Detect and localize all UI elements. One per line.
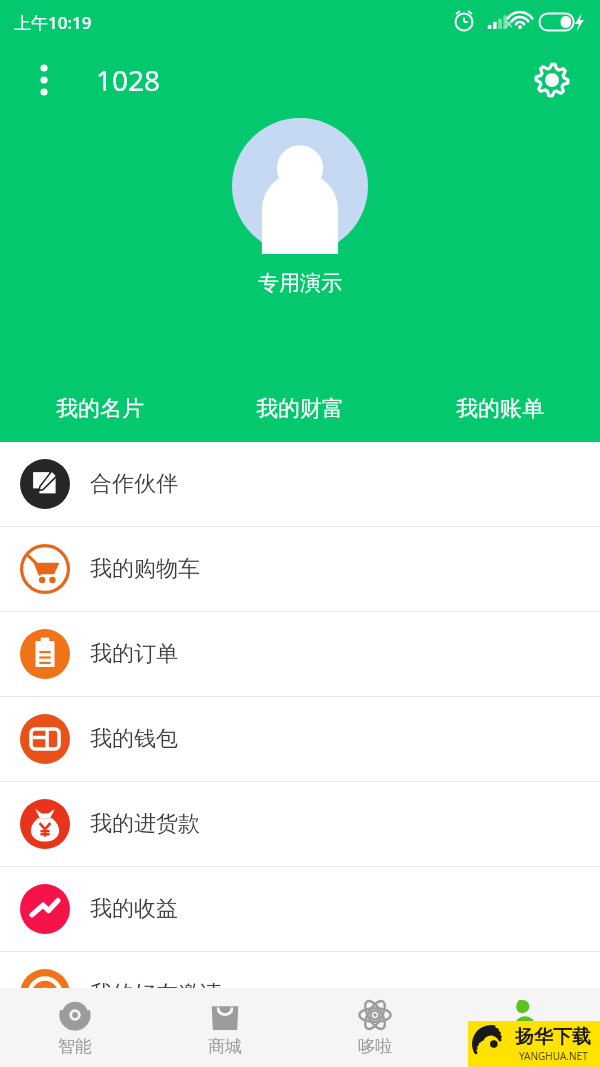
button[interactable]: 商城 bbox=[150, 988, 300, 1067]
button[interactable]: 我的购物车 bbox=[0, 527, 600, 611]
staticText: 我的好友邀请 bbox=[90, 980, 222, 1008]
staticText: 我的钱包 bbox=[90, 725, 178, 753]
button[interactable]: 我的钱包 bbox=[0, 697, 600, 781]
staticText: 我的名片 bbox=[56, 395, 144, 423]
staticText: 商城 bbox=[208, 1036, 242, 1057]
button[interactable]: 我的收益 bbox=[0, 867, 600, 951]
button[interactable]: 我的订单 bbox=[0, 612, 600, 696]
staticText: 智能 bbox=[58, 1036, 92, 1057]
staticText: YANGHUA.NET bbox=[519, 1049, 588, 1063]
staticText: 专用演示 bbox=[0, 270, 600, 296]
button[interactable]: 智能 bbox=[0, 988, 150, 1067]
staticText: 1028 bbox=[96, 61, 161, 99]
button[interactable]: 我的进货款 bbox=[0, 782, 600, 866]
button[interactable]: 我的名片 bbox=[0, 376, 200, 442]
staticText: 我的账单 bbox=[456, 395, 544, 423]
staticText: 合作伙伴 bbox=[90, 470, 178, 498]
staticText: 我的财富 bbox=[256, 395, 344, 423]
staticText: 我的订单 bbox=[90, 640, 178, 668]
button[interactable]: 我的 bbox=[450, 988, 600, 1067]
button[interactable]: 我的好友邀请 bbox=[0, 952, 600, 1036]
staticText: 我的收益 bbox=[90, 895, 178, 923]
button[interactable]: More options bbox=[24, 60, 64, 100]
button[interactable]: 我的账单 bbox=[400, 376, 600, 442]
button[interactable]: 哆啦 bbox=[300, 988, 450, 1067]
staticText: 扬华下载 bbox=[515, 1025, 591, 1049]
button[interactable]: Settings bbox=[528, 56, 576, 104]
staticText: 哆啦 bbox=[358, 1036, 392, 1057]
staticText: 我的进货款 bbox=[90, 810, 200, 838]
staticText: 我的 bbox=[508, 1036, 542, 1057]
button[interactable]: 合作伙伴 bbox=[0, 442, 600, 526]
button[interactable]: 我的财富 bbox=[200, 376, 400, 442]
staticText: 我的购物车 bbox=[90, 555, 200, 583]
staticText: 上午10:19 bbox=[14, 11, 92, 34]
